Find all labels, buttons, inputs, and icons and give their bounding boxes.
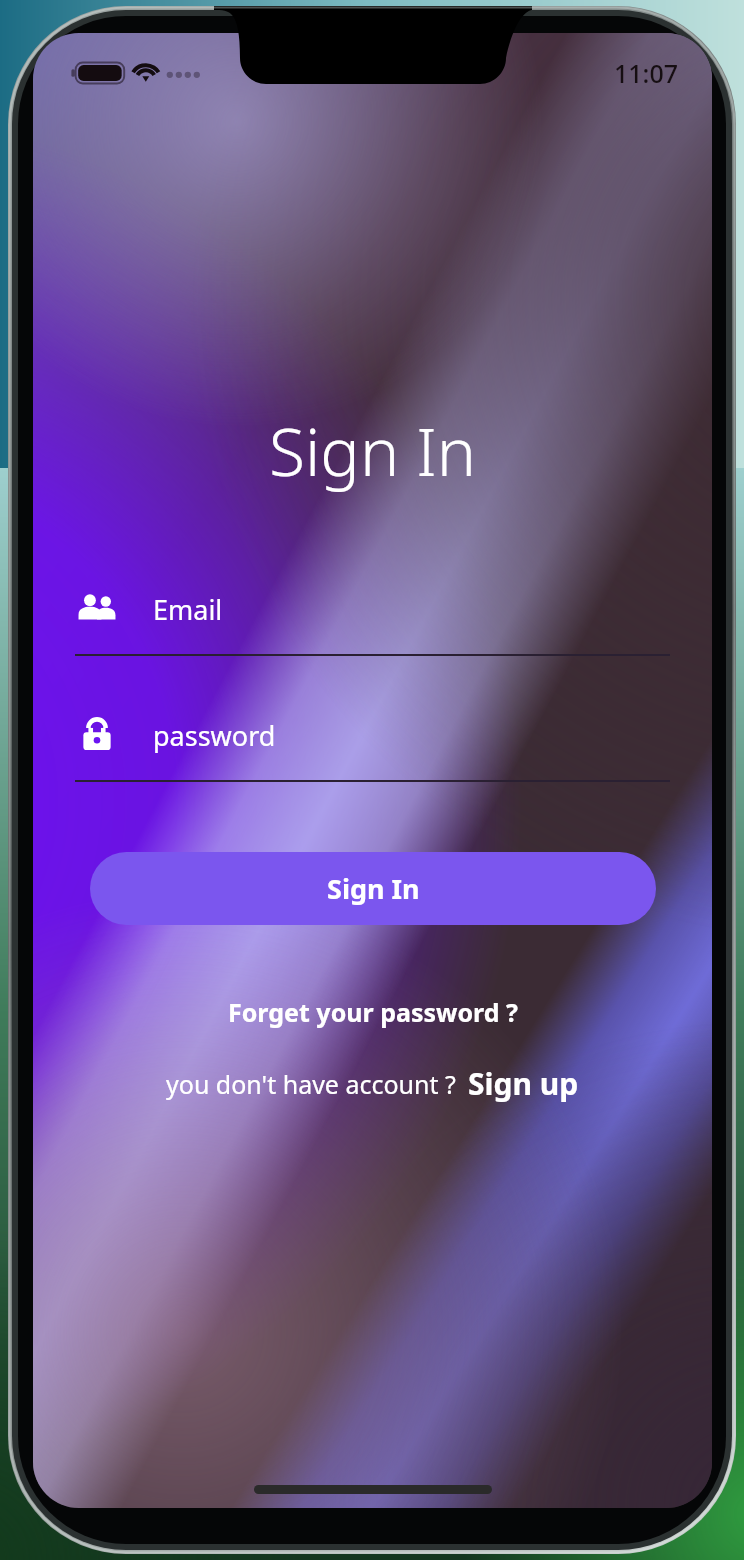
staticText: 11:07: [614, 56, 679, 90]
button[interactable]: Forget your password ?: [218, 989, 528, 1035]
staticText: you don't have account ?: [166, 1067, 456, 1101]
button[interactable]: password: [75, 713, 670, 782]
staticText: Sign In: [269, 405, 477, 495]
staticText: Sign up: [468, 1063, 579, 1104]
button[interactable]: Email: [75, 587, 670, 656]
staticText: Sign In: [327, 870, 420, 907]
button[interactable]: Sign up: [468, 1063, 579, 1104]
button[interactable]: Sign In: [90, 852, 656, 925]
staticText: password: [153, 717, 276, 754]
staticText: Forget your password ?: [228, 995, 518, 1029]
staticText: Email: [153, 591, 223, 628]
